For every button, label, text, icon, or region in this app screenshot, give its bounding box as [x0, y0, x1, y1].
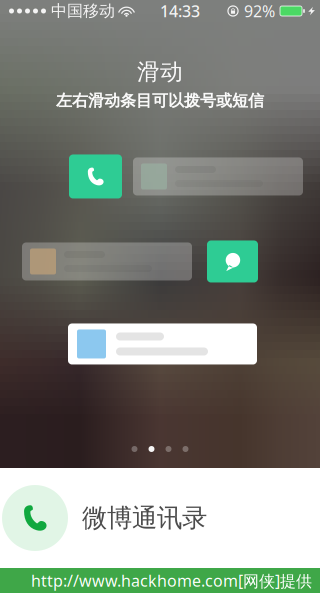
- staticText: http://www.hackhome.com[网侠]提供: [31, 570, 312, 591]
- staticText: 中国移动: [51, 1, 115, 21]
- staticText: 微博通讯录: [82, 502, 207, 533]
- button[interactable]: 发短信: [207, 240, 258, 282]
- button[interactable]: 拨号: [69, 154, 122, 198]
- staticText: 左右滑动条目可以拨号或短信: [56, 91, 264, 110]
- staticText: 92%: [244, 0, 275, 22]
- staticText: 14:33: [160, 0, 200, 22]
- staticText: 滑动: [137, 58, 183, 86]
